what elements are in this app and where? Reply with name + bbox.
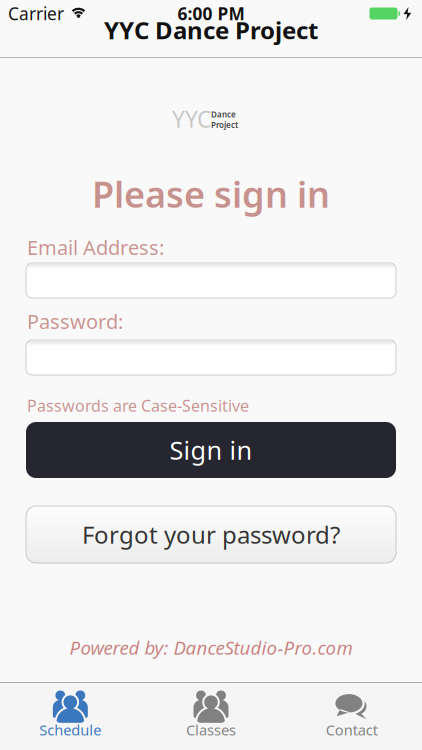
staticText: Sign in — [169, 433, 252, 467]
staticText: Project — [211, 120, 238, 130]
staticText: Contact — [326, 720, 378, 739]
staticText: Password: — [27, 308, 123, 335]
staticText: Carrier — [8, 2, 64, 25]
staticText: YYC Dance Project — [104, 14, 318, 46]
staticText: 6:00 PM — [177, 2, 244, 25]
staticText: Dance — [211, 109, 236, 120]
staticText: Classes — [186, 720, 236, 739]
staticText: Please sign in — [92, 170, 330, 218]
staticText: Passwords are Case-Sensitive — [27, 395, 249, 416]
staticText: Powered by: DanceStudio-Pro.com — [69, 635, 352, 660]
staticText: Schedule — [39, 720, 101, 739]
staticText: Forgot your password? — [82, 519, 340, 550]
staticText: YYC — [172, 104, 211, 134]
staticText: Email Address: — [27, 234, 164, 261]
